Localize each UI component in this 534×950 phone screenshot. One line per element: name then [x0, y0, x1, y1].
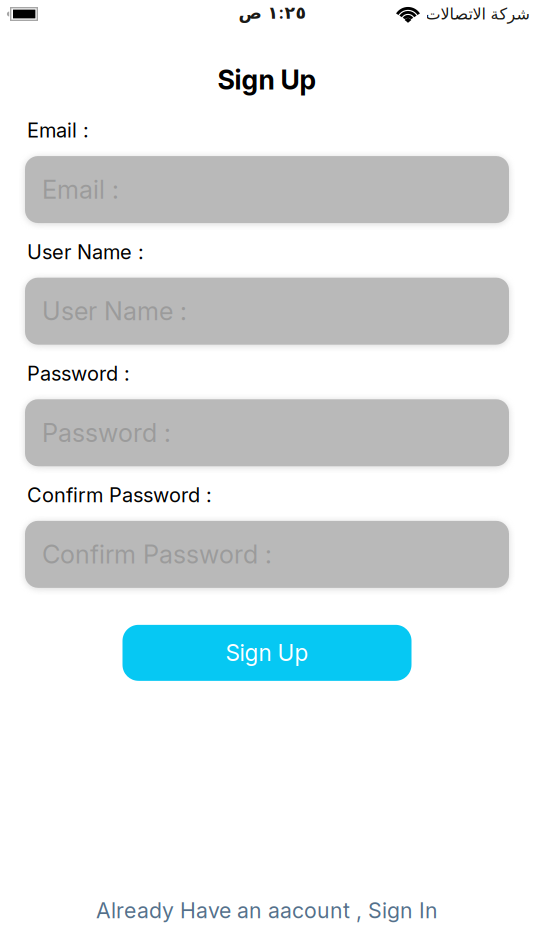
staticText: Email :	[42, 175, 119, 204]
button[interactable]: Email :	[25, 156, 509, 223]
staticText: شركة الاتصالات	[425, 5, 529, 23]
button[interactable]: Already Have an aacount , Sign In	[96, 898, 438, 923]
button[interactable]: Password :	[25, 399, 509, 466]
staticText: Confirm Password :	[42, 539, 272, 569]
button[interactable]: User Name :	[25, 278, 509, 345]
staticText: Sign Up	[217, 64, 316, 95]
button[interactable]: Confirm Password :	[25, 521, 509, 588]
staticText: Sign Up	[225, 639, 308, 666]
staticText: Email :	[27, 118, 89, 142]
staticText: User Name :	[27, 240, 144, 264]
staticText: Already Have an aacount , Sign In	[96, 898, 438, 923]
staticText: Confirm Password :	[27, 483, 212, 507]
staticText: Password :	[27, 362, 130, 385]
staticText: User Name :	[42, 296, 187, 326]
staticText: Password :	[42, 418, 171, 448]
staticText: ١:٢٥ ص	[238, 2, 306, 23]
button[interactable]: Sign Up	[122, 625, 411, 681]
